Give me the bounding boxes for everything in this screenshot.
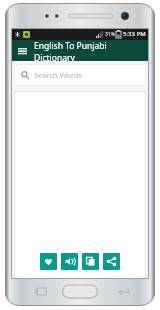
staticText: Search Words xyxy=(34,70,83,80)
button[interactable]: Pronounce word xyxy=(61,253,78,270)
button[interactable]: Copy xyxy=(82,253,99,270)
staticText: 5:33 PM xyxy=(123,30,146,38)
button[interactable]: Share xyxy=(103,253,120,270)
button[interactable]: Add to favourites xyxy=(40,253,57,270)
staticText: 31% xyxy=(105,31,115,38)
staticText: English To Punjabi Dictionary xyxy=(34,40,149,61)
button[interactable]: Search Words xyxy=(14,64,146,86)
button[interactable]: Open navigation menu xyxy=(15,44,29,58)
